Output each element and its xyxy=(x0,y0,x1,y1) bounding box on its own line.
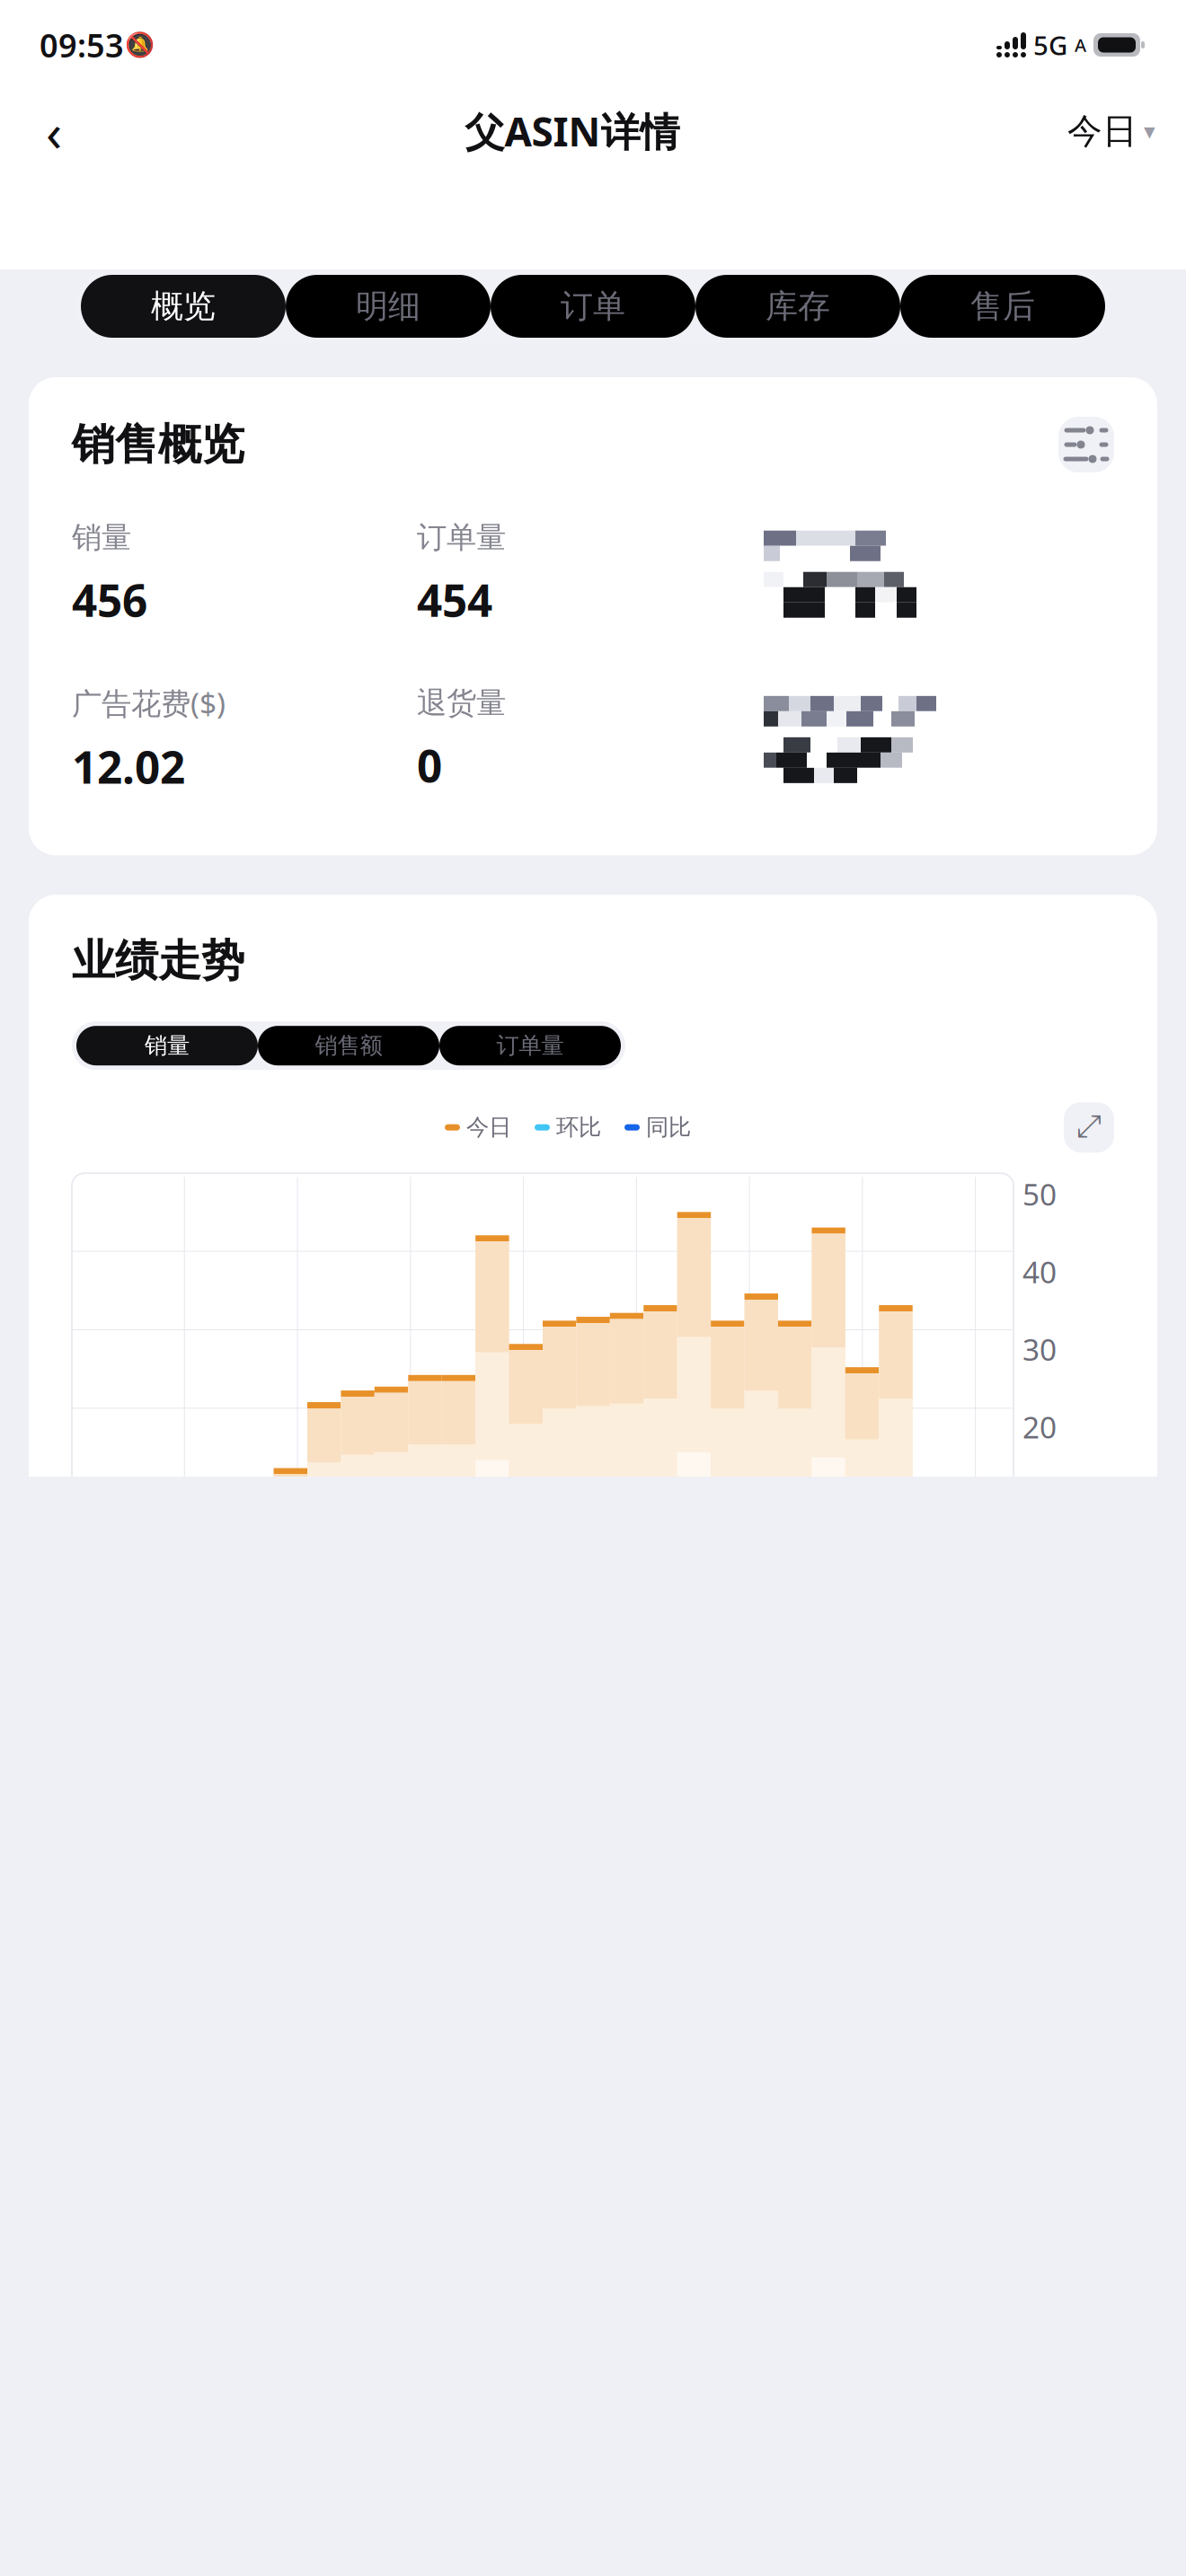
staticText: 12.02 xyxy=(72,737,185,796)
staticText: 销量 xyxy=(145,1032,190,1060)
button[interactable]: 订单 xyxy=(491,275,695,338)
staticText: A xyxy=(1075,33,1086,57)
button[interactable]: 订单量 xyxy=(439,1026,621,1065)
staticText: 今日 xyxy=(1067,110,1137,153)
staticText: ⤢ xyxy=(1076,1112,1102,1143)
staticText: 概览 xyxy=(151,286,216,326)
staticText: 🔕 xyxy=(124,31,154,59)
button[interactable]: Filter xyxy=(1058,417,1114,472)
staticText: 5G xyxy=(1033,27,1067,62)
button[interactable]: Expand chart xyxy=(1064,1102,1114,1153)
staticText: 今日 xyxy=(466,1113,511,1141)
button[interactable]: 销售额 xyxy=(258,1026,439,1065)
staticText: 售后 xyxy=(970,286,1035,326)
button[interactable]: 明细 xyxy=(286,275,491,338)
staticText: 454 xyxy=(417,570,492,629)
staticText: 明细 xyxy=(356,286,420,326)
button[interactable]: 售后 xyxy=(900,275,1105,338)
staticText: 40 xyxy=(1022,1252,1057,1292)
staticText: 订单量 xyxy=(496,1032,564,1060)
staticText: 销售概览 xyxy=(72,418,244,471)
staticText: 456 xyxy=(72,570,147,629)
staticText: ‹ xyxy=(46,96,62,166)
button[interactable]: 今日 xyxy=(1053,100,1170,163)
staticText: 环比 xyxy=(556,1113,601,1141)
staticText: 同比 xyxy=(646,1113,691,1141)
button[interactable]: Back xyxy=(16,100,92,163)
staticText: 父ASIN详情 xyxy=(465,105,680,157)
staticText: 销售额 xyxy=(315,1032,382,1060)
staticText: 订单 xyxy=(561,286,625,326)
button[interactable]: 库存 xyxy=(695,275,900,338)
staticText: 销量 xyxy=(72,519,131,556)
staticText: 业绩走势 xyxy=(72,934,244,987)
staticText: 09:53 xyxy=(40,23,124,66)
staticText: 0 xyxy=(417,736,442,795)
staticText: 20 xyxy=(1022,1407,1057,1447)
button[interactable]: 概览 xyxy=(81,275,286,338)
staticText: 订单量 xyxy=(417,519,506,556)
button[interactable]: 销量 xyxy=(76,1026,258,1065)
staticText: 30 xyxy=(1022,1329,1057,1369)
staticText: ▾ xyxy=(1144,118,1155,144)
staticText: 退货量 xyxy=(417,685,506,721)
staticText: 库存 xyxy=(766,286,830,326)
staticText: 50 xyxy=(1022,1174,1057,1214)
staticText: 广告花费($) xyxy=(72,683,226,723)
